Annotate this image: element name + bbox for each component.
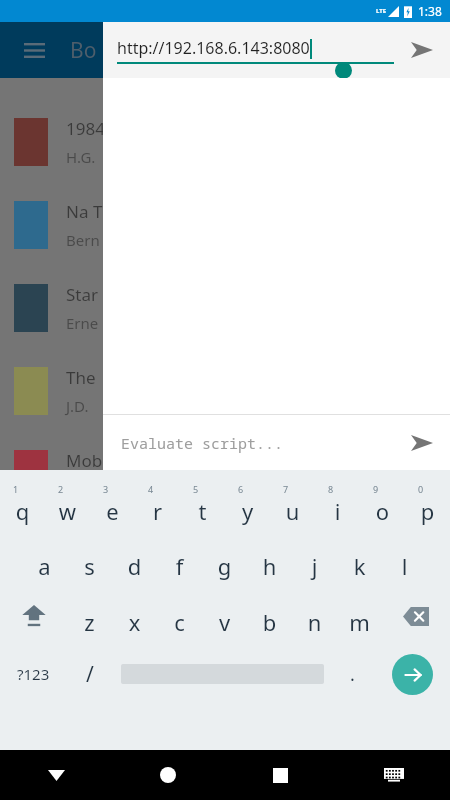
staticText: n (292, 607, 337, 637)
button[interactable]: 9 (360, 476, 405, 532)
staticText: d (112, 551, 157, 581)
button[interactable]: Hide keyboard (0, 750, 112, 800)
button[interactable]: 7 (270, 476, 315, 532)
button[interactable]: http://192.168.6.143:8080 (117, 37, 394, 64)
staticText: 4 (128, 483, 173, 495)
staticText: ?123 (17, 664, 50, 684)
staticText: u (270, 496, 315, 526)
staticText: Bern (66, 230, 100, 250)
staticText: f (157, 551, 202, 581)
button[interactable]: 2 (45, 476, 90, 532)
staticText: r (135, 496, 180, 526)
button[interactable]: Backspace (382, 588, 450, 644)
button[interactable]: b (247, 588, 292, 644)
button[interactable]: h (247, 532, 292, 588)
staticText: 6 (218, 483, 263, 495)
button[interactable]: / (66, 644, 113, 704)
button[interactable]: j (292, 532, 337, 588)
button[interactable]: Enter (374, 644, 450, 704)
staticText: m (337, 607, 382, 637)
button[interactable]: Home (112, 750, 224, 800)
button[interactable]: 1984 (0, 100, 450, 183)
staticText: q (0, 496, 45, 526)
staticText: s (67, 551, 112, 581)
button[interactable]: g (202, 532, 247, 588)
staticText: 7 (263, 483, 308, 495)
button[interactable]: Evaluate script... (121, 433, 284, 453)
staticText: c (157, 607, 202, 637)
button[interactable]: z (67, 588, 112, 644)
button[interactable]: s (67, 532, 112, 588)
button[interactable]: 8 (315, 476, 360, 532)
button[interactable]: 6 (225, 476, 270, 532)
staticText: 2 (38, 483, 83, 495)
button[interactable] (113, 644, 331, 704)
staticText: e (90, 496, 135, 526)
staticText: w (45, 496, 90, 526)
staticText: http://192.168.6.143:8080 (117, 37, 310, 59)
staticText: p (405, 496, 450, 526)
staticText: 5 (173, 483, 218, 495)
button[interactable]: 4 (135, 476, 180, 532)
button[interactable]: 1 (0, 476, 45, 532)
staticText: 9 (353, 483, 398, 495)
staticText: Erne (66, 313, 99, 333)
staticText: 3 (83, 483, 128, 495)
button[interactable]: Shift (0, 588, 67, 644)
staticText: b (247, 607, 292, 637)
button[interactable]: 3 (90, 476, 135, 532)
staticText: 0 (398, 483, 443, 495)
staticText: 8 (308, 483, 353, 495)
button[interactable]: a (22, 532, 67, 588)
button[interactable]: Star (0, 266, 450, 349)
button[interactable]: 0 (405, 476, 450, 532)
staticText: J.D. (66, 396, 89, 416)
button[interactable]: Menu (14, 30, 54, 70)
button[interactable]: d (112, 532, 157, 588)
button[interactable]: Mob (0, 432, 450, 515)
button[interactable]: k (337, 532, 382, 588)
button[interactable]: Recents (224, 750, 337, 800)
staticText: 1:38 (418, 3, 442, 19)
staticText: Herm (66, 479, 106, 499)
button[interactable]: x (112, 588, 157, 644)
staticText: x (112, 607, 157, 637)
staticText: y (225, 496, 270, 526)
staticText: 1984 (66, 117, 105, 140)
staticText: o (360, 496, 405, 526)
staticText: g (202, 551, 247, 581)
staticText: . (350, 662, 355, 687)
staticText: Na T (66, 200, 103, 223)
staticText: The (66, 366, 96, 389)
button[interactable]: m (337, 588, 382, 644)
button[interactable]: Na T (0, 183, 450, 266)
button[interactable]: l (382, 532, 427, 588)
button[interactable]: Go (402, 30, 442, 70)
button[interactable]: Switch keyboard (337, 750, 450, 800)
staticText: 1 (0, 483, 38, 495)
staticText: v (202, 607, 247, 637)
staticText: LTE (376, 7, 387, 15)
button[interactable]: 5 (180, 476, 225, 532)
staticText: H.G. (66, 147, 96, 167)
staticText: / (86, 660, 94, 689)
button[interactable]: c (157, 588, 202, 644)
button[interactable]: f (157, 532, 202, 588)
button[interactable]: ?123 (0, 644, 66, 704)
staticText: j (292, 551, 337, 581)
staticText: Star (66, 283, 99, 306)
staticText: z (67, 607, 112, 637)
staticText: l (382, 551, 427, 581)
button[interactable]: Run script (402, 423, 442, 463)
button[interactable]: v (202, 588, 247, 644)
button[interactable]: The (0, 349, 450, 432)
staticText: a (22, 551, 67, 581)
button[interactable]: . (331, 644, 374, 704)
staticText: i (315, 496, 360, 526)
staticText: Mob (66, 449, 103, 472)
staticText: Bo (70, 36, 97, 65)
staticText: t (180, 496, 225, 526)
staticText: k (337, 551, 382, 581)
staticText: h (247, 551, 292, 581)
button[interactable]: n (292, 588, 337, 644)
